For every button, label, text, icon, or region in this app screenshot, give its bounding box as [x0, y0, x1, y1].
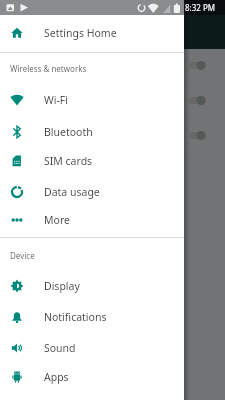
staticText: Wireless & networks: [10, 63, 87, 74]
button[interactable]: Data usage: [0, 176, 184, 207]
staticText: Settings Home: [44, 26, 117, 40]
staticText: More: [44, 213, 70, 227]
staticText: SIM cards: [44, 154, 93, 168]
button[interactable]: Wi-Fi: [0, 84, 184, 115]
staticText: Display: [44, 279, 80, 293]
button[interactable]: More: [0, 204, 184, 235]
button[interactable]: Display: [0, 270, 184, 301]
staticText: Data usage: [44, 185, 100, 199]
staticText: Wi-Fi: [44, 93, 69, 107]
button[interactable]: Bluetooth: [0, 116, 184, 147]
staticText: Device: [10, 250, 35, 261]
button[interactable]: Settings Home: [0, 17, 184, 48]
staticText: Sound: [44, 341, 76, 355]
button[interactable]: SIM cards: [0, 145, 184, 176]
staticText: 8:32 PM: [185, 2, 216, 13]
staticText: Apps: [44, 370, 69, 384]
staticText: Notifications: [44, 310, 107, 324]
button[interactable]: Apps: [0, 361, 184, 392]
button[interactable]: Sound: [0, 332, 184, 363]
button[interactable]: Notifications: [0, 301, 184, 332]
staticText: Bluetooth: [44, 125, 93, 139]
